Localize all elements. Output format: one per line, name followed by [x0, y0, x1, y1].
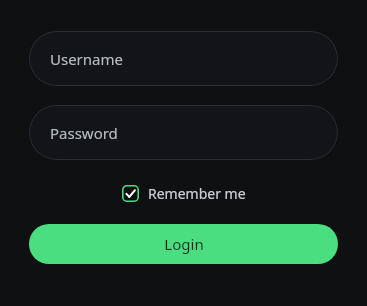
staticText: Username: [50, 49, 123, 69]
staticText: Password: [50, 123, 118, 143]
button[interactable]: Remember me: [120, 182, 248, 205]
staticText: Login: [164, 234, 204, 254]
button[interactable]: Username: [29, 31, 338, 86]
staticText: Remember me: [148, 184, 246, 203]
button[interactable]: Login: [29, 224, 338, 264]
button[interactable]: Password: [29, 105, 338, 160]
